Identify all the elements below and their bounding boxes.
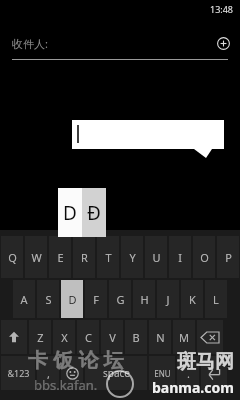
staticText: D xyxy=(63,200,77,226)
staticText: W xyxy=(31,250,42,265)
staticText: F xyxy=(93,292,99,307)
button[interactable]: C xyxy=(77,320,99,354)
button[interactable]: O xyxy=(193,236,215,278)
staticText: N xyxy=(156,330,165,345)
button[interactable]: W xyxy=(25,236,47,278)
button[interactable]: E xyxy=(49,236,71,278)
staticText: 卡 饭 论 坛 xyxy=(28,346,124,373)
staticText: I xyxy=(178,250,182,265)
staticText: X xyxy=(61,330,68,345)
staticText: ENU xyxy=(154,368,171,379)
button[interactable]: D xyxy=(58,188,106,237)
staticText: V xyxy=(109,330,116,345)
button[interactable]: Z xyxy=(29,320,51,354)
button[interactable] xyxy=(1,320,27,354)
button[interactable]: A xyxy=(13,280,35,318)
button[interactable]: K xyxy=(181,280,203,318)
staticText: Z xyxy=(37,330,44,345)
button[interactable]: S xyxy=(37,280,59,318)
staticText: G xyxy=(116,292,125,307)
staticText: D xyxy=(68,292,77,307)
staticText: T xyxy=(105,250,112,265)
button[interactable]: I xyxy=(169,236,191,278)
button[interactable]: Add recipient xyxy=(217,37,230,50)
staticText: O xyxy=(200,250,209,265)
staticText: J xyxy=(166,292,170,307)
button[interactable] xyxy=(201,356,227,390)
staticText: K xyxy=(189,292,196,307)
button[interactable]: D xyxy=(61,280,83,318)
button[interactable]: space xyxy=(85,356,147,390)
staticText: R xyxy=(81,250,88,265)
staticText: bbs.kafan. xyxy=(34,376,98,394)
button[interactable]: H xyxy=(133,280,155,318)
staticText: B xyxy=(132,330,140,345)
button[interactable] xyxy=(61,356,83,390)
staticText: 斑马网 xyxy=(177,350,234,374)
staticText: C xyxy=(85,330,92,345)
button[interactable]: G xyxy=(109,280,131,318)
button[interactable]: B xyxy=(125,320,147,354)
staticText: Q xyxy=(8,250,17,265)
button[interactable]: T xyxy=(97,236,119,278)
button[interactable]: U xyxy=(145,236,167,278)
staticText: A xyxy=(20,292,28,307)
staticText: &123 xyxy=(7,367,30,379)
staticText: 13:48 xyxy=(210,3,234,15)
button[interactable]: Y xyxy=(121,236,143,278)
staticText: space xyxy=(103,366,130,380)
staticText: . xyxy=(187,366,190,381)
button[interactable]: Q xyxy=(1,236,23,278)
staticText: P xyxy=(225,250,232,265)
button[interactable]: M xyxy=(173,320,195,354)
button[interactable]: X xyxy=(53,320,75,354)
button[interactable]: 收件人: xyxy=(0,26,240,60)
button[interactable]: F xyxy=(85,280,107,318)
button[interactable]: V xyxy=(101,320,123,354)
button[interactable]: , xyxy=(37,356,59,390)
staticText: U xyxy=(152,250,161,265)
button[interactable] xyxy=(72,120,224,158)
button[interactable]: &123 xyxy=(1,356,35,390)
staticText: M xyxy=(179,330,189,345)
button[interactable]: . xyxy=(177,356,199,390)
staticText: S xyxy=(45,292,52,307)
staticText: Ð xyxy=(87,200,101,226)
staticText: , xyxy=(47,366,50,381)
staticText: E xyxy=(57,250,64,265)
button[interactable]: N xyxy=(149,320,171,354)
staticText: Y xyxy=(129,250,136,265)
staticText: L xyxy=(213,292,219,307)
button[interactable]: ENU xyxy=(149,356,175,390)
button[interactable]: P xyxy=(217,236,239,278)
button[interactable]: J xyxy=(157,280,179,318)
staticText: 收件人: xyxy=(12,36,48,51)
button[interactable] xyxy=(197,320,223,354)
staticText: banma.com xyxy=(152,378,234,397)
button[interactable]: R xyxy=(73,236,95,278)
button[interactable]: L xyxy=(205,280,227,318)
staticText: H xyxy=(140,292,149,307)
